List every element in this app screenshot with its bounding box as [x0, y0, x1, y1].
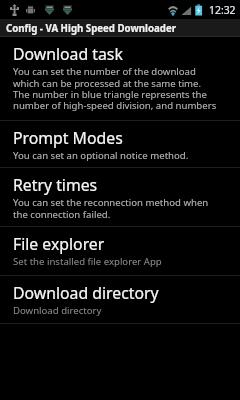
staticText: You can set the number of the download w… — [13, 65, 217, 112]
button[interactable]: Download task — [0, 37, 240, 120]
button[interactable]: Retry times — [0, 168, 240, 226]
button[interactable]: Prompt Modes — [0, 121, 240, 167]
staticText: Prompt Modes — [13, 127, 123, 149]
staticText: Download task — [13, 43, 123, 65]
staticText: You can set the reconnection method when… — [13, 196, 209, 221]
staticText: Config - VA High Speed Downloader — [6, 22, 177, 35]
staticText: You can set an optional notice method. — [13, 149, 189, 162]
other: Download in progress — [63, 5, 72, 15]
other: Download in progress — [45, 5, 54, 15]
button[interactable]: Config - VA High Speed Downloader — [0, 19, 240, 37]
staticText: Retry times — [13, 174, 98, 196]
button[interactable]: File explorer — [0, 227, 240, 275]
other: Mobile signal — [181, 5, 192, 16]
staticText: Set the installed file explorer App — [13, 255, 162, 268]
other: USB connected — [10, 4, 19, 16]
other: Wi-Fi signal — [166, 5, 180, 16]
staticText: File explorer — [13, 233, 105, 255]
other: Battery charging — [194, 4, 203, 16]
staticText: Download directory — [13, 282, 159, 304]
button[interactable]: Download directory — [0, 276, 240, 323]
staticText: Download directory — [13, 304, 102, 317]
other: USB debugging — [26, 5, 35, 15]
staticText: 12:32 — [209, 3, 236, 17]
